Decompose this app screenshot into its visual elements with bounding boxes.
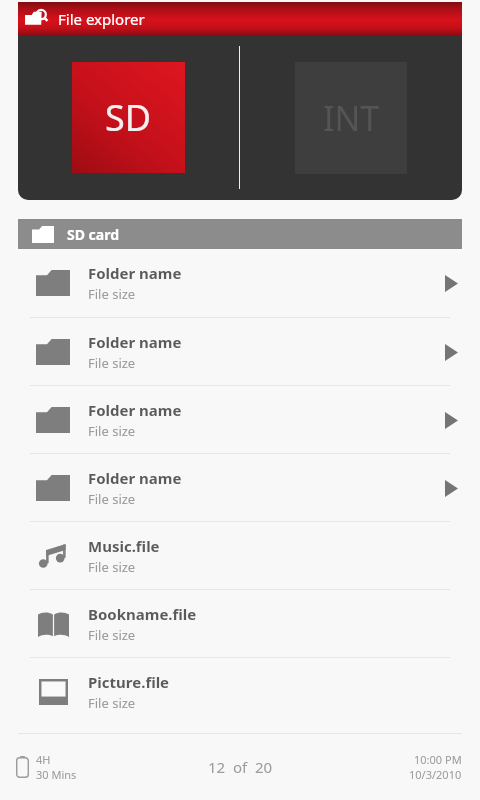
staticText: File size xyxy=(88,694,136,712)
button[interactable]: Picture.file xyxy=(0,658,480,725)
button[interactable]: Search files xyxy=(24,6,50,32)
staticText: INT xyxy=(323,95,380,141)
staticText: 30 Mins xyxy=(36,767,77,782)
staticText: Picture.file xyxy=(88,672,170,692)
staticText: Folder name xyxy=(88,468,182,488)
staticText: SD xyxy=(105,93,152,142)
button[interactable]: Folder name xyxy=(0,386,480,453)
staticText: Folder name xyxy=(88,263,182,283)
button[interactable]: Open folder xyxy=(432,469,470,507)
button[interactable]: Open folder xyxy=(432,401,470,439)
staticText: 4H xyxy=(36,752,51,767)
button[interactable]: Folder name xyxy=(0,454,480,521)
button[interactable]: Open folder xyxy=(432,333,470,371)
button[interactable]: SD card xyxy=(18,219,462,249)
button[interactable]: Folder name xyxy=(0,249,480,317)
staticText: File size xyxy=(88,285,136,303)
staticText: Bookname.file xyxy=(88,604,197,624)
staticText: SD card xyxy=(67,225,120,244)
staticText: File size xyxy=(88,354,136,372)
staticText: 10/3/2010 xyxy=(409,767,462,782)
button[interactable]: SD xyxy=(18,35,239,200)
button[interactable]: Music.file xyxy=(0,522,480,589)
button[interactable]: INT xyxy=(240,35,462,200)
staticText: 12 of 20 xyxy=(208,757,273,777)
staticText: File size xyxy=(88,626,136,644)
staticText: Folder name xyxy=(88,400,182,420)
staticText: File size xyxy=(88,422,136,440)
button[interactable]: Folder name xyxy=(0,318,480,385)
staticText: Music.file xyxy=(88,536,160,556)
staticText: Folder name xyxy=(88,332,182,352)
staticText: 10:00 PM xyxy=(414,752,462,767)
staticText: File size xyxy=(88,558,136,576)
staticText: File size xyxy=(88,490,136,508)
button[interactable]: Bookname.file xyxy=(0,590,480,657)
staticText: File explorer xyxy=(58,9,145,29)
button[interactable]: Search files xyxy=(18,2,462,35)
button[interactable]: Open folder xyxy=(432,264,470,302)
